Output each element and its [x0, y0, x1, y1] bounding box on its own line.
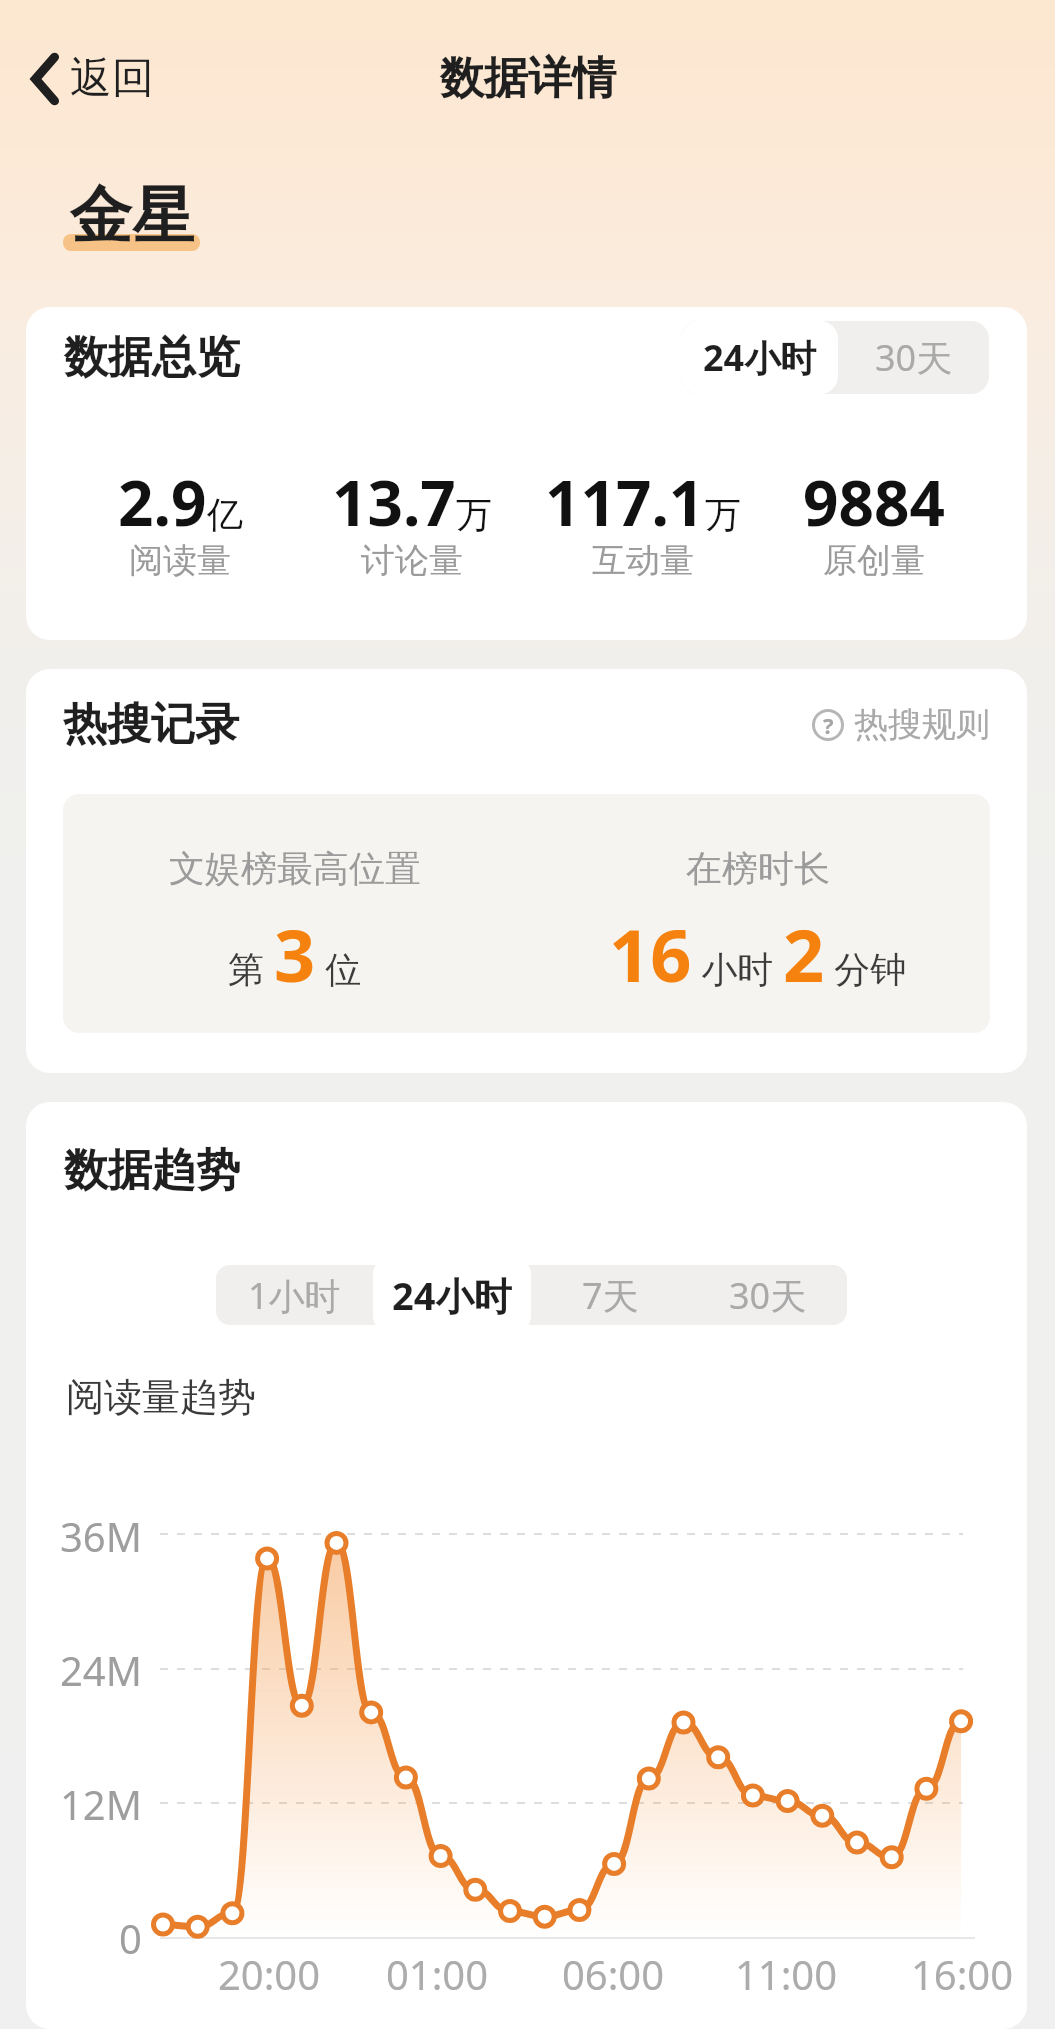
staticText: 12M: [46, 1777, 142, 1831]
staticText: 2: [783, 905, 825, 1003]
staticText: 返回: [70, 52, 154, 105]
staticText: 06:00: [543, 1947, 683, 2001]
staticText: 热搜规则: [854, 703, 990, 746]
staticText: 在榜时长: [686, 846, 830, 891]
staticText: 位: [316, 944, 362, 993]
staticText: 数据详情: [440, 51, 616, 106]
staticText: 小时: [692, 944, 783, 993]
button[interactable]: 返回: [28, 52, 154, 105]
staticText: 3: [274, 905, 316, 1003]
staticText: 亿: [207, 492, 243, 537]
staticText: 数据总览: [64, 330, 240, 385]
staticText: 20:00: [199, 1947, 339, 2001]
staticText: 24小时: [392, 1269, 512, 1321]
staticText: 金星: [70, 177, 194, 255]
staticText: 24小时: [703, 333, 817, 382]
staticText: 原创量: [823, 539, 925, 582]
staticText: 万: [456, 492, 492, 537]
staticText: 11:00: [716, 1947, 856, 2001]
staticText: 万: [705, 492, 741, 537]
staticText: 分钟: [825, 944, 907, 993]
staticText: 第: [228, 944, 274, 993]
staticText: 1小时: [248, 1271, 341, 1320]
staticText: 9884: [803, 460, 945, 544]
button[interactable]: 30天: [689, 1258, 847, 1332]
staticText: 2.9: [118, 460, 207, 544]
staticText: 30天: [729, 1271, 807, 1320]
staticText: 01:00: [367, 1947, 507, 2001]
staticText: 7天: [582, 1271, 639, 1320]
staticText: 117.1: [545, 460, 705, 544]
staticText: 阅读量趋势: [66, 1373, 256, 1421]
staticText: 数据趋势: [64, 1143, 240, 1198]
staticText: 互动量: [592, 539, 694, 582]
staticText: 0: [46, 1911, 142, 1965]
button[interactable]: 24小时: [373, 1258, 531, 1332]
staticText: 16:00: [892, 1947, 1027, 2001]
button[interactable]: 7天: [531, 1258, 689, 1332]
staticText: 24M: [46, 1643, 142, 1697]
staticText: ?: [823, 710, 834, 740]
staticText: 热搜记录: [63, 697, 239, 752]
staticText: 13.7: [332, 460, 456, 544]
staticText: 文娱榜最高位置: [169, 846, 421, 891]
button[interactable]: 24小时: [681, 321, 838, 394]
staticText: 阅读量: [129, 539, 231, 582]
button[interactable]: ?: [812, 703, 990, 746]
staticText: 讨论量: [361, 539, 463, 582]
button[interactable]: 30天: [838, 321, 989, 394]
staticText: 36M: [46, 1509, 142, 1563]
staticText: 30天: [875, 333, 953, 382]
staticText: 16: [609, 905, 692, 1003]
button[interactable]: 1小时: [216, 1258, 373, 1332]
